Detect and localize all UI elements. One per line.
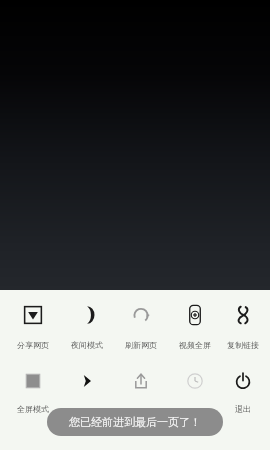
button[interactable]: 夜间模式 <box>60 302 114 350</box>
button[interactable]: 历史记录 <box>168 368 222 415</box>
staticText: 分享网页 <box>17 340 49 350</box>
staticText: 您已经前进到最后一页了！ <box>69 415 201 429</box>
button[interactable]: 分享 <box>114 368 168 415</box>
button[interactable]: 您已经前进到最后一页了！ <box>47 408 223 436</box>
staticText: 复制链接 <box>227 340 259 350</box>
staticText: 全屏模式 <box>17 404 49 414</box>
button[interactable]: 复制链接 <box>222 302 264 350</box>
button[interactable]: 前进 <box>60 368 114 415</box>
button[interactable]: 分享网页 <box>6 302 60 350</box>
staticText: 刷新网页 <box>125 340 157 350</box>
staticText: 夜间模式 <box>71 340 103 350</box>
button[interactable]: 全屏模式 <box>6 368 60 414</box>
button[interactable]: 视频全屏 <box>168 302 222 350</box>
staticText: 视频全屏 <box>179 340 211 350</box>
button[interactable]: 刷新网页 <box>114 302 168 350</box>
staticText: 退出 <box>235 404 251 414</box>
button[interactable]: 退出 <box>222 368 264 414</box>
